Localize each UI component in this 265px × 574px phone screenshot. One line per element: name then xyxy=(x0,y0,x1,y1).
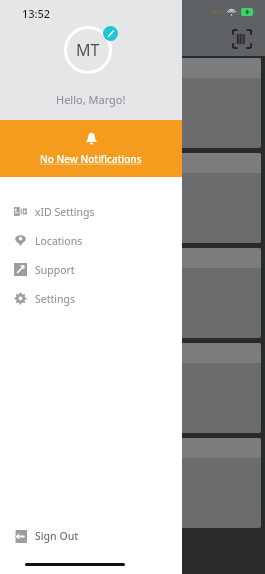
button[interactable]: WAIVER xyxy=(4,438,261,528)
button[interactable]: LOYALTY xyxy=(4,343,261,433)
button[interactable]: Edit profile photo xyxy=(64,26,118,80)
button[interactable]: Scan barcode xyxy=(233,30,251,48)
staticText: Settings xyxy=(35,292,75,306)
button[interactable]: Sign Out xyxy=(0,522,182,550)
button[interactable]: Support xyxy=(0,255,182,284)
button[interactable]: xID Settings xyxy=(0,197,182,226)
staticText: xID Settings xyxy=(35,205,95,219)
staticText: 13:52 xyxy=(22,6,51,21)
staticText: CONNECTED APPS xyxy=(12,252,91,264)
button[interactable]: CONNECTED APPS xyxy=(4,248,261,338)
staticText: No New Notifications xyxy=(40,152,142,166)
button[interactable]: Locations xyxy=(0,226,182,255)
button[interactable]: ACTIVITY FEED xyxy=(4,153,261,243)
button[interactable]: Settings xyxy=(0,284,182,313)
button[interactable]: No New Notifications xyxy=(0,120,182,177)
staticText: Support xyxy=(35,263,75,277)
staticText: MT xyxy=(76,39,100,61)
staticText: Sign Out xyxy=(35,529,79,543)
staticText: Locations xyxy=(35,234,83,248)
staticText: Hello, Margo! xyxy=(56,92,126,107)
button[interactable]: CHALLENGES xyxy=(4,58,261,148)
staticText: ACTIVITY FEED xyxy=(12,157,75,169)
